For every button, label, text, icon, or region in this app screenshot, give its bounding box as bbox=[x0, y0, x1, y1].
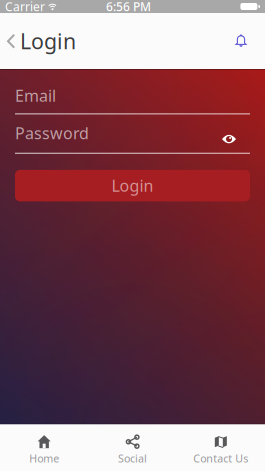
staticText: Social bbox=[118, 451, 147, 465]
staticText: Email bbox=[15, 85, 56, 106]
button[interactable]: Login bbox=[15, 170, 250, 201]
button[interactable]: Social bbox=[88, 430, 177, 465]
button[interactable]: Notifications bbox=[235, 34, 265, 48]
staticText: Login bbox=[111, 175, 153, 196]
staticText: 6:56 PM bbox=[106, 0, 151, 14]
staticText: Password bbox=[15, 122, 89, 144]
button[interactable]: Home bbox=[0, 430, 88, 465]
staticText: Carrier bbox=[5, 0, 45, 14]
button[interactable]: Back bbox=[0, 27, 76, 55]
button[interactable]: Show password bbox=[222, 128, 250, 138]
staticText: Login bbox=[20, 27, 76, 55]
staticText: Home bbox=[29, 451, 59, 465]
button[interactable]: Contact Us bbox=[177, 430, 265, 465]
staticText: Contact Us bbox=[193, 451, 248, 465]
